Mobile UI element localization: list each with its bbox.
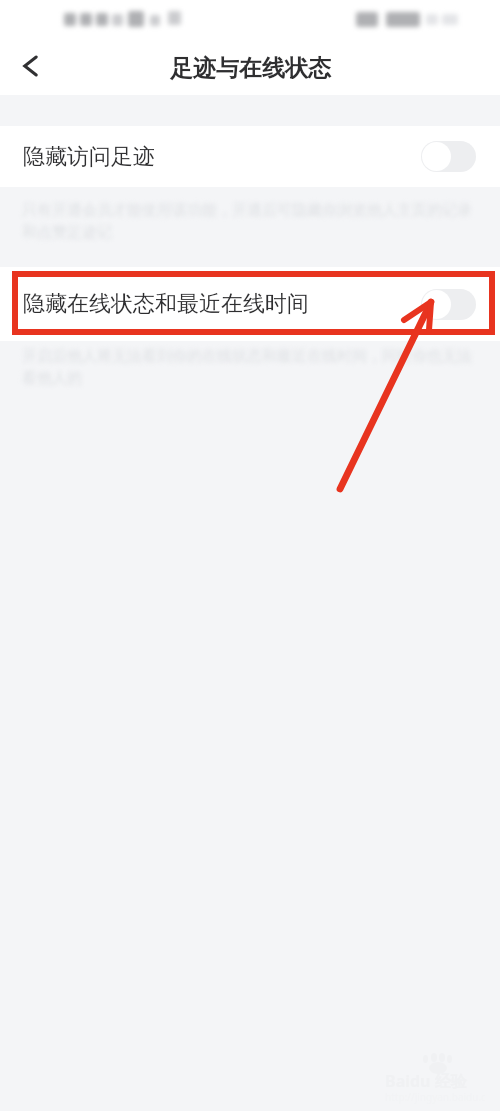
staticText: 足迹与在线状态	[170, 54, 331, 83]
button[interactable]: 隐藏在线状态和最近在线时间	[0, 267, 500, 341]
button[interactable]: 返回	[8, 44, 52, 88]
staticText: 开启后他人将无法看到你的在线状态和最近在线时间，同时你也无法	[22, 347, 472, 366]
staticText: 隐藏访问足迹	[23, 143, 155, 171]
staticText: 隐藏在线状态和最近在线时间	[23, 290, 309, 318]
button[interactable]: 开关	[421, 289, 476, 320]
button[interactable]: 隐藏访问足迹	[0, 126, 500, 187]
button[interactable]: 开关	[421, 141, 476, 172]
